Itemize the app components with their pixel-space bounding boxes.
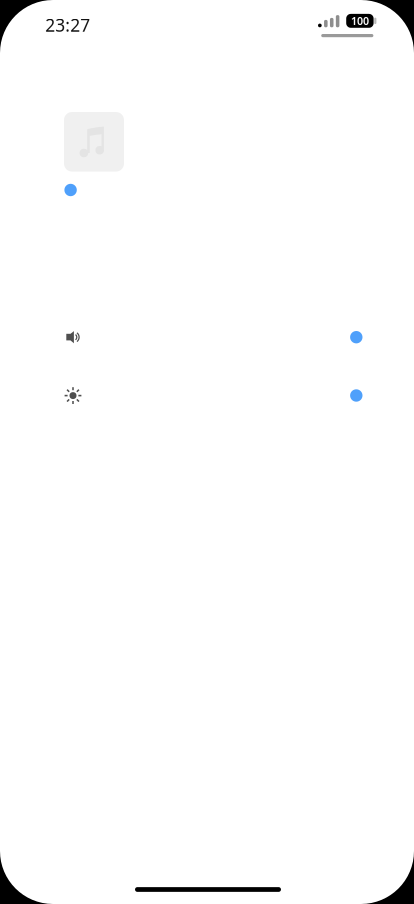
staticText: 100	[351, 14, 369, 28]
button[interactable]: Playback position	[64, 179, 362, 201]
button[interactable]: Volume	[64, 326, 362, 348]
button[interactable]: Now playing artwork	[64, 112, 124, 172]
button[interactable]: Brightness	[64, 384, 362, 406]
staticText: 23:27	[45, 14, 90, 37]
